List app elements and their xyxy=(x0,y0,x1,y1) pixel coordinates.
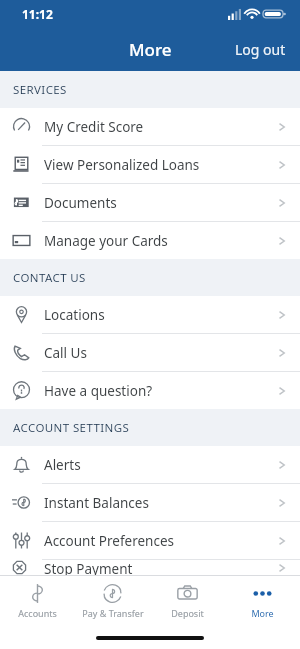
button[interactable]: Stop Payment xyxy=(0,560,300,575)
staticText: SERVICES xyxy=(13,82,67,98)
staticText: Stop Payment xyxy=(44,560,277,575)
staticText: My Credit Score xyxy=(44,118,277,136)
button[interactable]: Instant Balances xyxy=(0,484,300,522)
staticText: Deposit xyxy=(171,607,204,619)
staticText: Documents xyxy=(44,194,277,212)
button[interactable]: Log out xyxy=(221,32,300,67)
button[interactable]: Have a question? xyxy=(0,372,300,409)
button[interactable]: Documents xyxy=(0,184,300,222)
staticText: Have a question? xyxy=(44,382,277,400)
button[interactable]: Deposit xyxy=(150,576,225,626)
staticText: Instant Balances xyxy=(44,494,277,512)
button[interactable]: Call Us xyxy=(0,334,300,372)
staticText: Pay & Transfer xyxy=(82,607,144,619)
button[interactable]: View Personalized Loans xyxy=(0,146,300,184)
staticText: Locations xyxy=(44,306,277,324)
staticText: 11:12 xyxy=(22,6,53,22)
button[interactable]: Account Preferences xyxy=(0,522,300,560)
staticText: CONTACT US xyxy=(13,270,86,286)
staticText: ACCOUNT SETTINGS xyxy=(13,420,130,436)
staticText: More xyxy=(129,38,172,61)
staticText: Accounts xyxy=(18,607,57,619)
staticText: Call Us xyxy=(44,344,277,362)
staticText: Manage your Cards xyxy=(44,232,277,250)
button[interactable]: More xyxy=(225,576,300,626)
staticText: Alerts xyxy=(44,456,277,474)
staticText: More xyxy=(251,607,274,619)
button[interactable]: Pay & Transfer xyxy=(75,576,150,626)
button[interactable]: Locations xyxy=(0,296,300,334)
staticText: Account Preferences xyxy=(44,532,277,550)
button[interactable]: Accounts xyxy=(0,576,75,626)
button[interactable]: Alerts xyxy=(0,446,300,484)
staticText: Log out xyxy=(235,40,286,59)
staticText: View Personalized Loans xyxy=(44,156,277,174)
button[interactable]: My Credit Score xyxy=(0,108,300,146)
button[interactable]: Manage your Cards xyxy=(0,222,300,259)
